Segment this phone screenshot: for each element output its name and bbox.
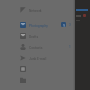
- button[interactable]: Junk E-mail: [0, 54, 75, 62]
- staticText: Drafts: [29, 34, 39, 38]
- other: Photography: [20, 22, 26, 28]
- button[interactable]: Photography: [0, 21, 75, 29]
- button[interactable]: Folder: [0, 76, 75, 84]
- staticText: Junk E-mail: [29, 56, 47, 60]
- staticText: Photography: [29, 23, 48, 27]
- other: Junk E-mail: [20, 55, 26, 61]
- button[interactable]: Network: [0, 6, 75, 14]
- staticText: Network: [29, 8, 42, 12]
- staticText: 3: [69, 23, 71, 27]
- staticText: Contacts: [29, 45, 43, 49]
- button[interactable]: Drafts: [0, 32, 75, 40]
- other: Network: [20, 7, 26, 13]
- other: Contacts: [20, 44, 26, 50]
- button[interactable]: Folder: [0, 65, 75, 73]
- other: Folder: [20, 66, 26, 72]
- other: Folder: [20, 77, 26, 83]
- staticText: 1: [69, 45, 71, 49]
- button[interactable]: Contacts: [0, 43, 75, 51]
- other: Drafts: [20, 33, 26, 39]
- staticText: 9: [63, 23, 65, 27]
